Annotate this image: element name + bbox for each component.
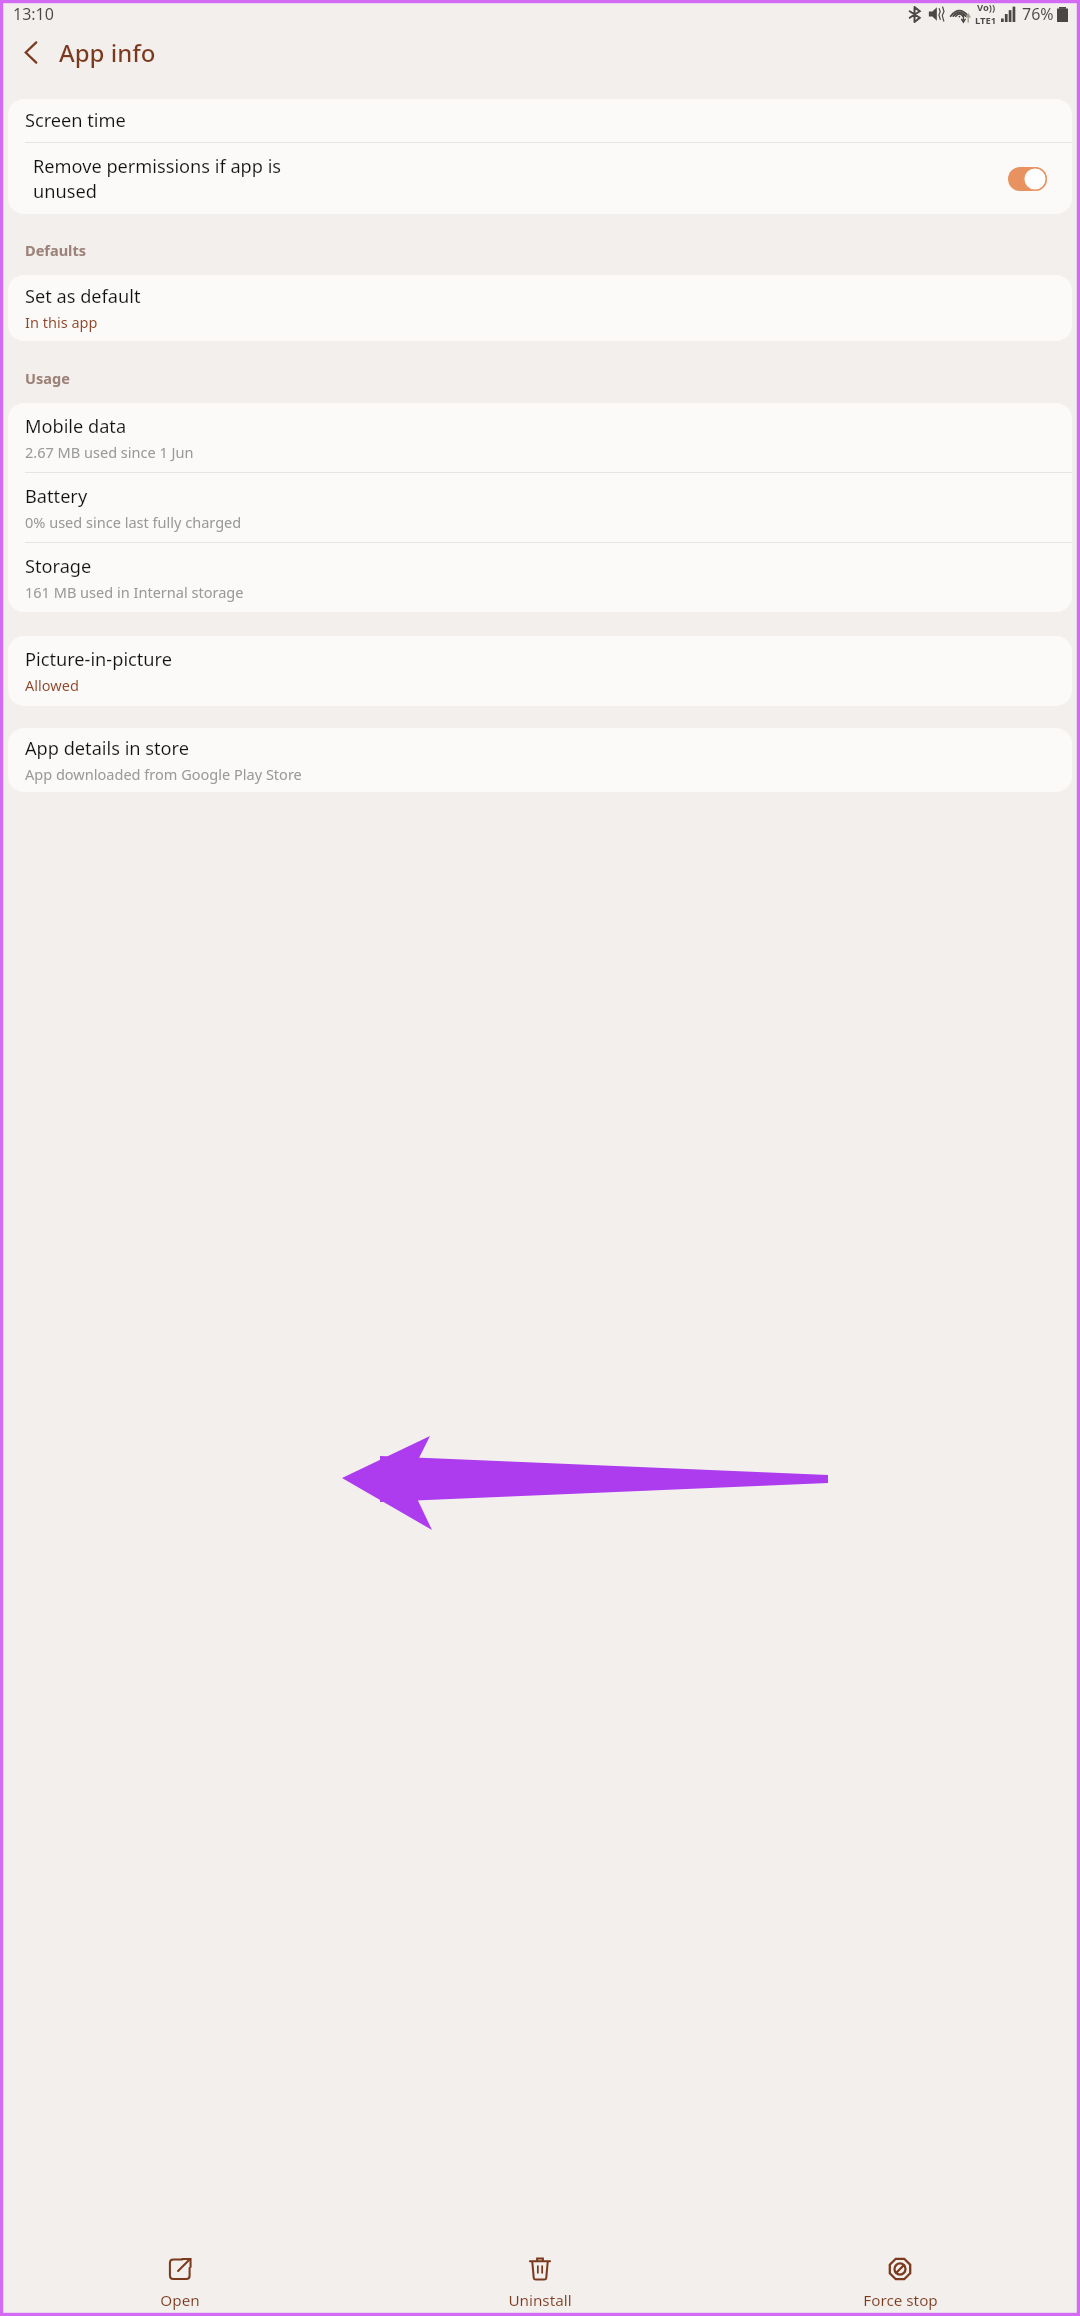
staticText: Mobile data	[25, 414, 127, 439]
button[interactable]: App details in store	[8, 728, 1072, 792]
button[interactable]: Force stop	[720, 2251, 1080, 2316]
staticText: Screen time	[25, 108, 126, 133]
staticText: Defaults	[25, 240, 87, 260]
staticText: 161 MB used in Internal storage	[25, 582, 244, 602]
staticText: Usage	[25, 368, 70, 388]
staticText: App details in store	[25, 736, 189, 761]
staticText: 2.67 MB used since 1 Jun	[25, 442, 194, 462]
staticText: Force stop	[863, 2290, 938, 2311]
staticText: Picture-in-picture	[25, 647, 172, 672]
staticText: Allowed	[25, 675, 79, 695]
staticText: Set as default	[25, 284, 141, 309]
button[interactable]: Back	[15, 36, 47, 68]
button[interactable]: Open	[0, 2251, 360, 2316]
staticText: Battery	[25, 484, 88, 509]
button[interactable]: Uninstall	[360, 2251, 720, 2316]
staticText: Remove permissions if app is	[33, 154, 282, 179]
staticText: 0% used since last fully charged	[25, 512, 242, 532]
staticText: 76%	[1022, 3, 1054, 25]
staticText: LTE1	[975, 14, 997, 27]
button[interactable]: Remove permissions toggle	[1008, 167, 1047, 191]
staticText: Open	[160, 2290, 200, 2311]
button[interactable]: Screen time	[8, 99, 1072, 142]
staticText: Vo))	[977, 1, 996, 14]
button[interactable]: Set as default	[8, 275, 1072, 341]
staticText: Storage	[25, 554, 92, 579]
staticText: 13:10	[13, 3, 54, 25]
button[interactable]: Mobile data	[8, 403, 1072, 472]
staticText: App info	[59, 36, 156, 69]
staticText: App downloaded from Google Play Store	[25, 764, 302, 784]
button[interactable]: Storage	[8, 543, 1072, 612]
staticText: unused	[33, 179, 97, 204]
staticText: Uninstall	[508, 2290, 572, 2311]
button[interactable]: Remove permissions if app is	[8, 143, 1072, 214]
staticText: In this app	[25, 312, 98, 332]
button[interactable]: Picture-in-picture	[8, 636, 1072, 706]
button[interactable]: Battery	[8, 473, 1072, 542]
